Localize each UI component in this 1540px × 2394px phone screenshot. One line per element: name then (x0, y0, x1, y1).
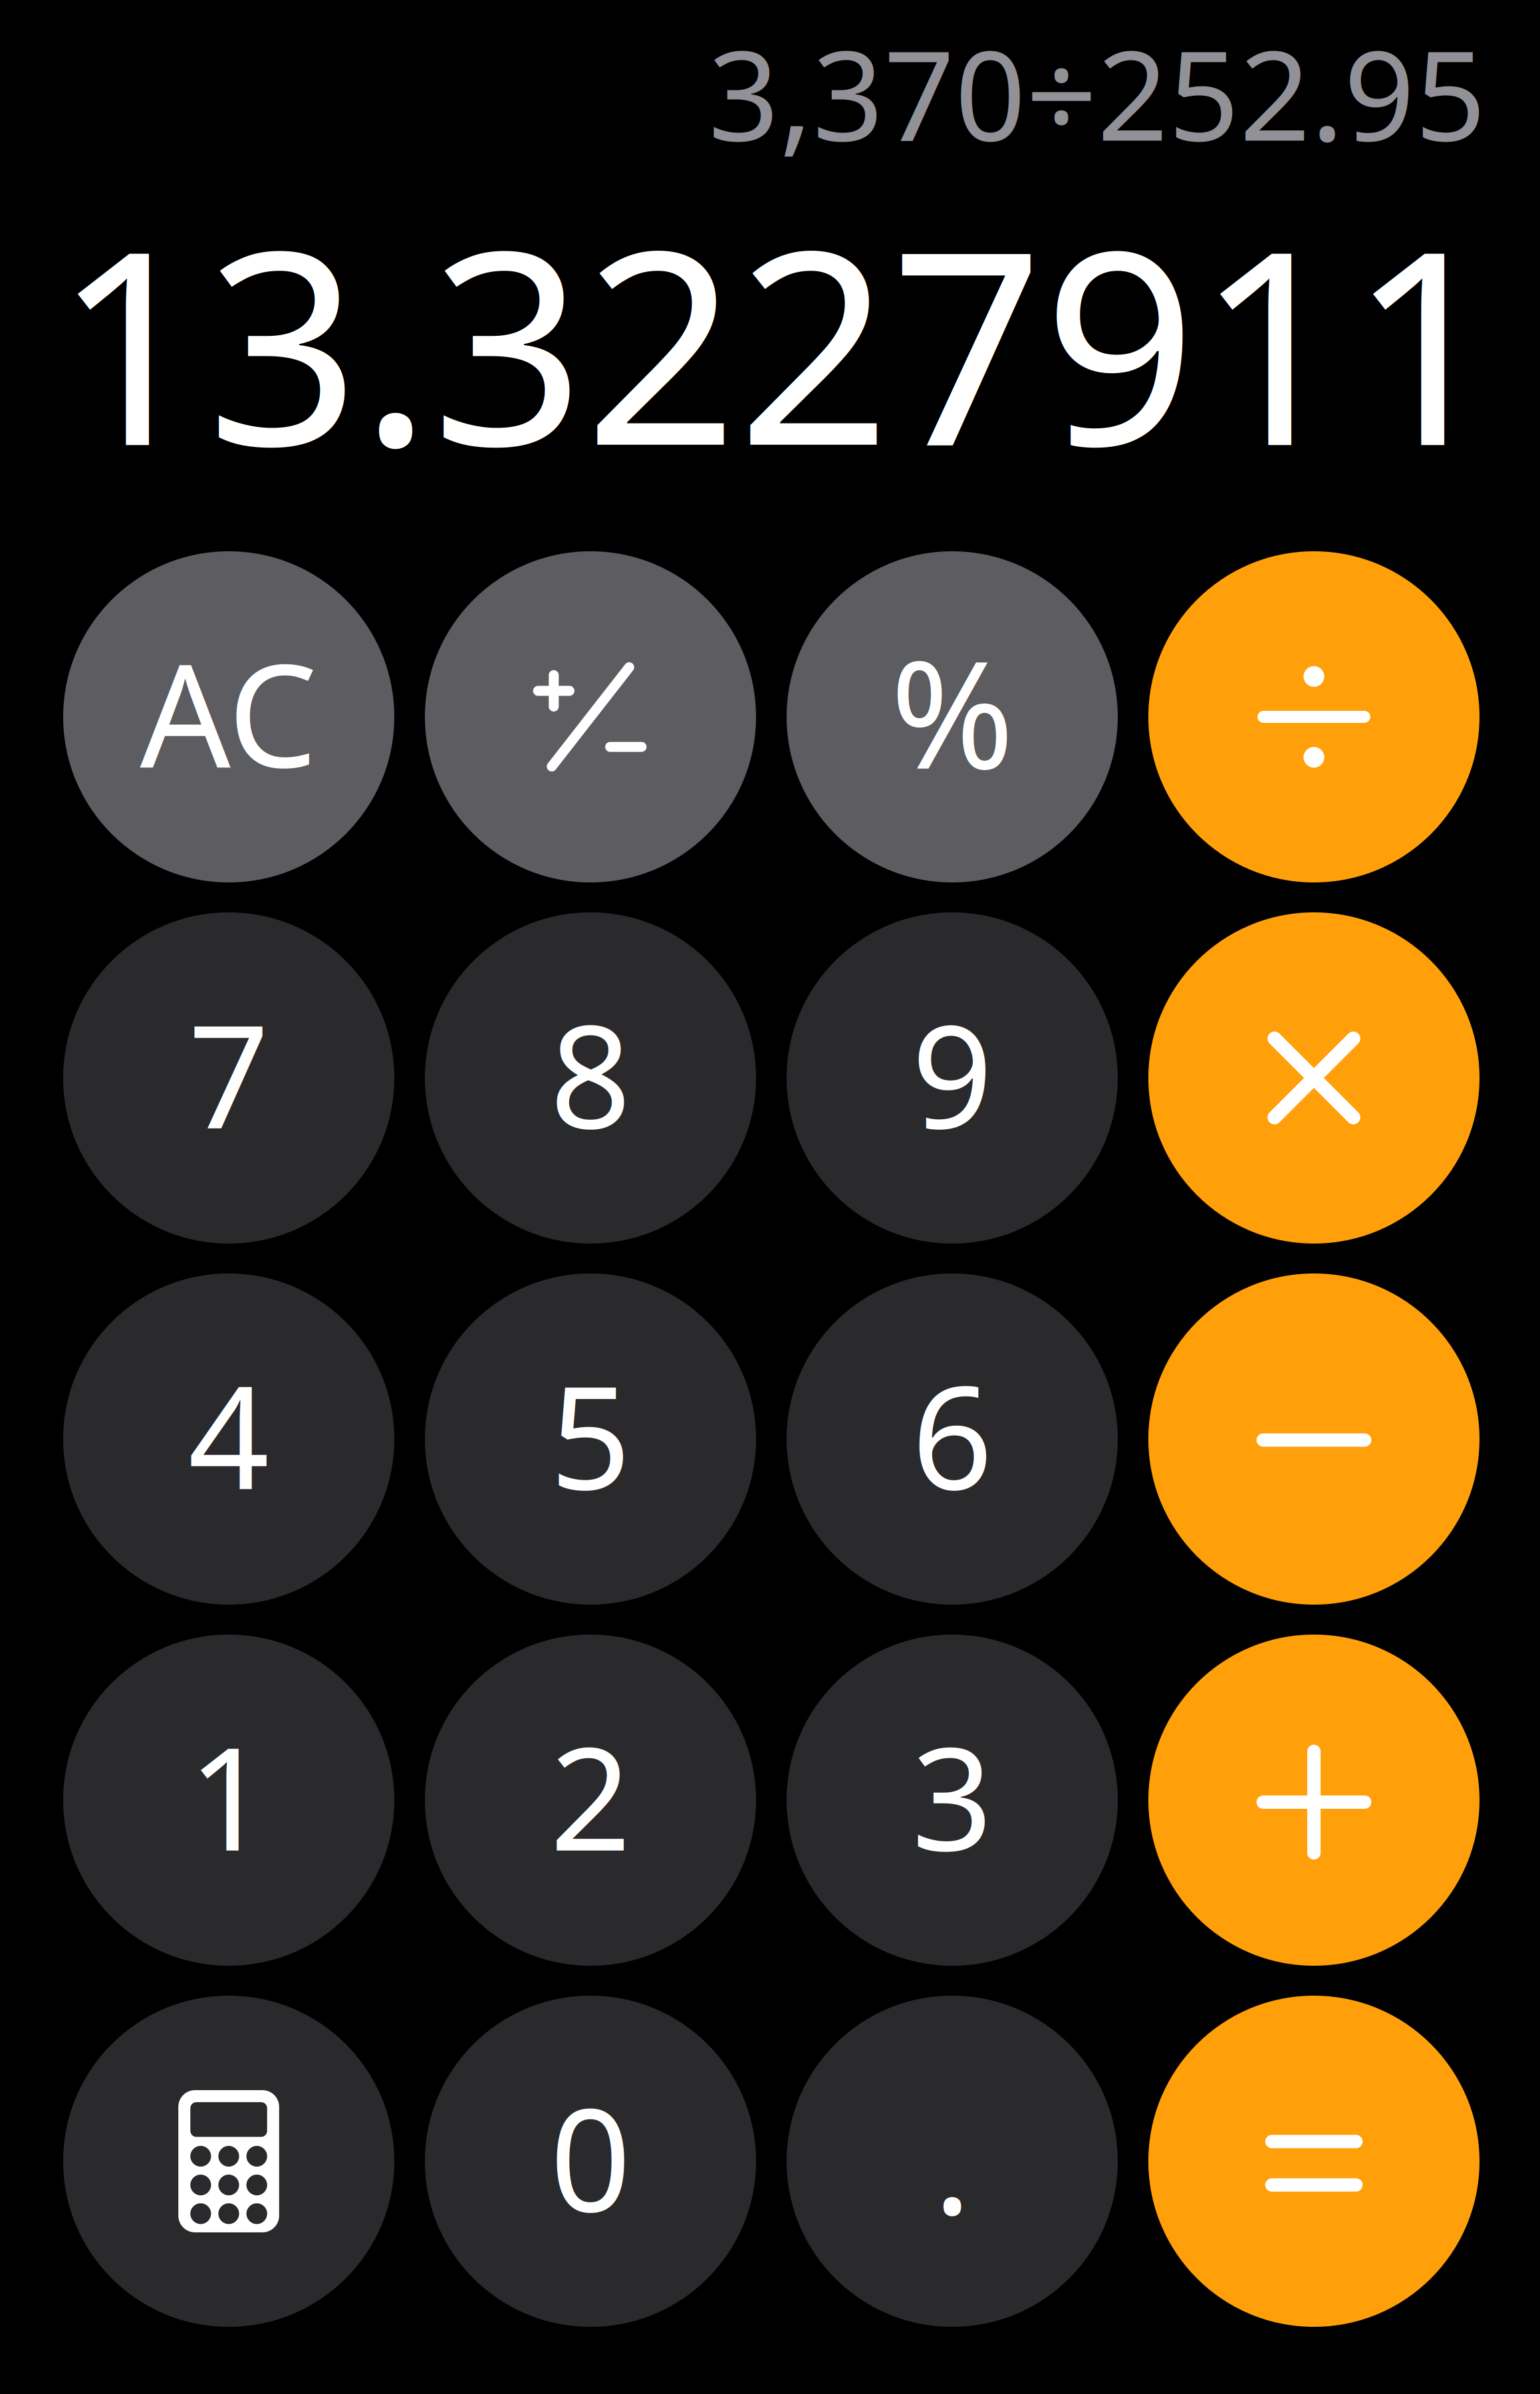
staticText: 3 (912, 1701, 993, 1890)
staticText: 0 (550, 2062, 631, 2251)
button[interactable]: 2 (425, 1635, 756, 1966)
button[interactable]: 5 (425, 1273, 756, 1605)
button[interactable]: 6 (787, 1273, 1118, 1605)
staticText: 2 (550, 1701, 631, 1890)
button[interactable]: 8 (425, 912, 756, 1244)
button[interactable]: Decimal Point (787, 1996, 1118, 2327)
button[interactable]: 0 (425, 1996, 756, 2327)
staticText: 8 (550, 979, 631, 1168)
button[interactable]: 3 (787, 1635, 1118, 1966)
button[interactable]: Minus (1148, 1273, 1479, 1605)
button[interactable]: 1 (63, 1635, 394, 1966)
button[interactable]: Equals (1148, 1996, 1479, 2327)
button[interactable]: Plus Minus (425, 551, 756, 882)
button[interactable]: All Clear (63, 551, 394, 882)
staticText: 5 (550, 1340, 631, 1529)
staticText: 9 (912, 979, 993, 1168)
button[interactable]: 9 (787, 912, 1118, 1244)
staticText: 13.3227911 (54, 163, 1502, 519)
staticText: 1 (188, 1701, 269, 1890)
button[interactable]: Percent (787, 551, 1118, 882)
button[interactable]: Plus (1148, 1635, 1479, 1966)
button[interactable]: Multiply (1148, 912, 1479, 1244)
staticText: % (890, 612, 1014, 810)
staticText: . (933, 2065, 971, 2253)
staticText: 4 (188, 1340, 269, 1529)
button[interactable]: 4 (63, 1273, 394, 1605)
staticText: 7 (188, 979, 269, 1168)
staticText: AC (140, 618, 318, 806)
staticText: 3,370÷252.95 (708, 10, 1486, 175)
button[interactable]: Calculator (63, 1996, 394, 2327)
button[interactable]: Divide (1148, 551, 1479, 882)
staticText: 6 (912, 1340, 993, 1529)
button[interactable]: 7 (63, 912, 394, 1244)
